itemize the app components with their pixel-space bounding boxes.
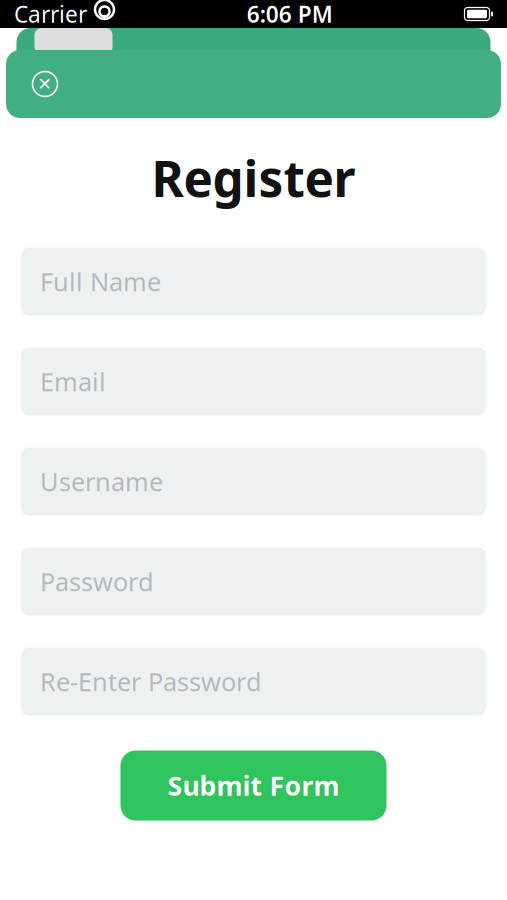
button[interactable]: Submit Form — [120, 750, 386, 820]
staticText: ✕ — [37, 74, 52, 94]
button[interactable]: Username — [21, 447, 486, 515]
staticText: Email — [40, 365, 106, 398]
staticText: Submit Form — [167, 768, 339, 803]
staticText: Carrier — [14, 0, 87, 29]
button[interactable]: Password — [21, 547, 486, 615]
staticText: Password — [40, 565, 154, 598]
button[interactable]: Email — [21, 347, 486, 415]
button[interactable]: Re-Enter Password — [21, 647, 486, 715]
staticText: Re-Enter Password — [40, 665, 262, 698]
button[interactable]: Close — [28, 67, 62, 101]
button[interactable]: Full Name — [21, 247, 486, 315]
staticText: 6:06 PM — [247, 0, 333, 29]
staticText: Full Name — [40, 265, 161, 298]
staticText: Username — [40, 465, 163, 498]
staticText: Register — [151, 145, 355, 210]
